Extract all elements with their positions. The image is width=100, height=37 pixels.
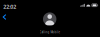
button[interactable]: Back xyxy=(0,11,11,23)
staticText: 22:02 xyxy=(3,3,16,10)
staticText: Calling Mobile xyxy=(39,30,60,34)
